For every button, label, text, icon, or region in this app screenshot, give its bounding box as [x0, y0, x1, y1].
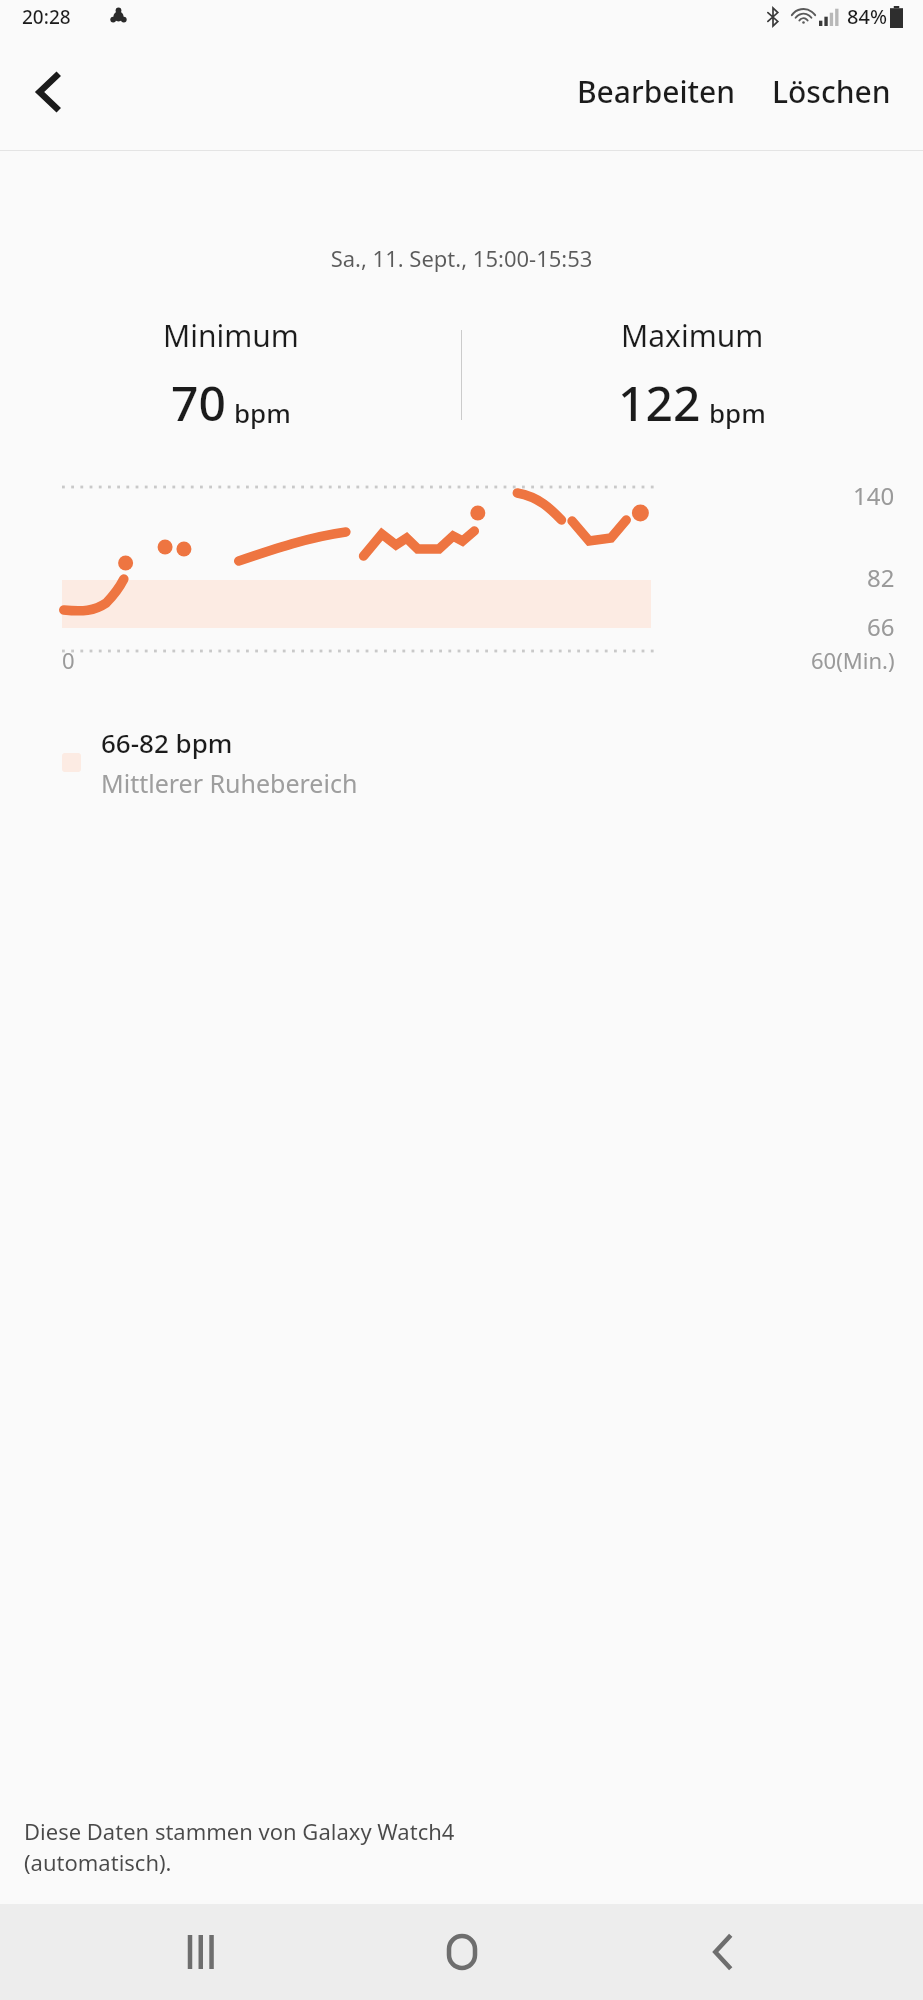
- staticText: 66-82 bpm: [101, 725, 233, 760]
- staticText: 70: [171, 370, 226, 435]
- staticText: 122: [618, 370, 701, 435]
- staticText: 84%: [847, 3, 887, 30]
- button[interactable]: Bearbeiten: [565, 59, 748, 124]
- staticText: Sa., 11. Sept., 15:00-15:53: [0, 243, 923, 273]
- staticText: Bearbeiten: [577, 71, 736, 112]
- staticText: 66: [867, 610, 895, 639]
- button[interactable]: Zurück: [662, 1904, 782, 2000]
- staticText: Löschen: [772, 71, 891, 112]
- staticText: Diese Daten stammen von Galaxy Watch4 (a…: [24, 1816, 455, 1878]
- button[interactable]: Zurück: [10, 54, 86, 130]
- staticText: 60(Min.): [811, 645, 895, 675]
- staticText: 0: [62, 645, 75, 675]
- staticText: Maximum: [621, 315, 764, 356]
- staticText: 82: [867, 561, 895, 594]
- button[interactable]: Startbildschirm: [402, 1904, 522, 2000]
- staticText: bpm: [234, 395, 291, 430]
- staticText: Minimum: [163, 315, 299, 356]
- staticText: Mittlerer Ruhebereich: [101, 766, 358, 800]
- button[interactable]: Letzte Apps: [141, 1904, 261, 2000]
- button[interactable]: Löschen: [760, 59, 903, 124]
- staticText: 140: [853, 479, 895, 512]
- staticText: 20:28: [22, 4, 71, 30]
- staticText: bpm: [709, 395, 766, 430]
